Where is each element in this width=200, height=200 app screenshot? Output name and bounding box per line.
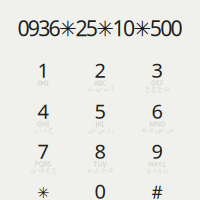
staticText: WXYZ	[148, 160, 166, 168]
staticText: آ ب پ ت	[87, 84, 113, 94]
staticText: 1	[37, 57, 48, 83]
staticText: 9	[151, 138, 162, 164]
staticText: ک گ ل م	[87, 165, 113, 175]
button[interactable]: 8	[71, 141, 128, 181]
staticText: ث ج چ ح	[145, 84, 169, 94]
button[interactable]: 2	[71, 60, 128, 100]
staticText: 8	[94, 138, 105, 164]
staticText: #	[151, 180, 162, 200]
staticText: ن و ه ی	[146, 165, 168, 175]
staticText: GHI	[37, 120, 49, 128]
staticText: ✳	[37, 185, 49, 200]
staticText: MNO	[149, 120, 165, 128]
button[interactable]: 6	[128, 101, 185, 141]
staticText: 4	[37, 98, 48, 124]
staticText: ص ض ط ظ	[141, 125, 173, 135]
staticText: DEF	[151, 79, 163, 87]
button[interactable]: 7	[14, 141, 71, 181]
button[interactable]: 5	[71, 101, 128, 141]
button[interactable]: 0936✳25✳10✳500	[0, 6, 200, 50]
staticText: 5	[94, 98, 105, 124]
staticText: ع غ ف ق	[30, 165, 55, 175]
staticText: ز ژ س ش	[87, 125, 113, 135]
button[interactable]: 1	[14, 60, 71, 100]
staticText: 0936✳25✳10✳500	[17, 14, 183, 42]
staticText: PQRS	[34, 160, 51, 168]
staticText: 7	[37, 138, 48, 164]
button[interactable]: 0	[71, 180, 128, 200]
staticText: خ د ذ ر	[34, 125, 52, 135]
staticText: 6	[151, 98, 162, 124]
button[interactable]: 9	[128, 141, 185, 181]
staticText: JKL	[95, 120, 104, 128]
staticText: ABC	[94, 79, 106, 87]
button[interactable]: 3	[128, 60, 185, 100]
button[interactable]: 4	[14, 101, 71, 141]
staticText: TUV	[93, 160, 106, 168]
button[interactable]: ✳	[14, 180, 71, 200]
staticText: 2	[94, 57, 105, 83]
button[interactable]: #	[128, 180, 185, 200]
staticText: 3	[151, 57, 162, 83]
staticText: 0	[94, 178, 105, 200]
